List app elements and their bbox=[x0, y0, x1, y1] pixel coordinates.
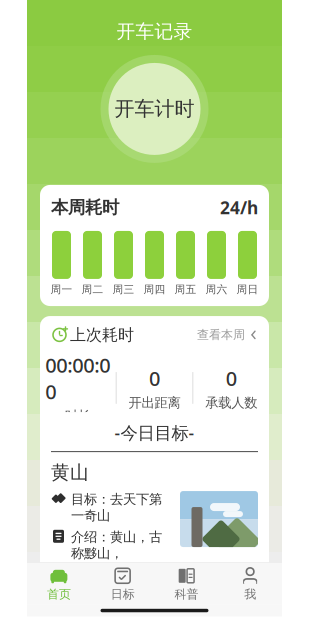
staticText: 科普 bbox=[174, 587, 198, 601]
staticText: 日标 bbox=[111, 587, 135, 601]
button[interactable]: 查看本周 bbox=[197, 327, 258, 342]
button[interactable]: 开车计时 bbox=[98, 53, 210, 165]
staticText: 24/h bbox=[220, 196, 258, 219]
staticText: 周一 bbox=[50, 283, 72, 296]
staticText: 首页 bbox=[47, 587, 71, 601]
staticText: 周三 bbox=[112, 283, 134, 296]
staticText: 周二 bbox=[81, 283, 103, 296]
staticText: 周六 bbox=[205, 283, 227, 296]
staticText: 时长 bbox=[65, 408, 91, 424]
staticText: 承载人数 bbox=[205, 394, 257, 411]
button[interactable]: 科普 bbox=[154, 563, 218, 604]
button[interactable]: 日标 bbox=[91, 563, 155, 604]
staticText: 周五 bbox=[174, 283, 196, 296]
staticText: 介绍：黄山，古称黟山， 位于安徽省黄山市境内 bbox=[71, 529, 162, 594]
staticText: 周四 bbox=[143, 283, 165, 296]
staticText: 0 bbox=[226, 365, 237, 392]
staticText: 查看本周 bbox=[197, 327, 245, 342]
staticText: 0 bbox=[149, 365, 160, 392]
staticText: -今日目标- bbox=[114, 421, 194, 444]
staticText: 00:00:00 bbox=[45, 352, 110, 405]
staticText: 我 bbox=[244, 587, 256, 601]
staticText: 开车记录 bbox=[116, 20, 192, 43]
button[interactable]: 我 bbox=[218, 563, 282, 604]
staticText: 黄山 bbox=[51, 461, 89, 484]
button[interactable]: 首页 bbox=[27, 563, 91, 604]
staticText: 开出距离 bbox=[128, 394, 180, 411]
staticText: 本周耗时 bbox=[51, 197, 119, 218]
staticText: 周日 bbox=[236, 283, 258, 296]
staticText: 上次耗时 bbox=[70, 325, 134, 345]
staticText: 开车计时 bbox=[114, 97, 194, 121]
staticText: 目标：去天下第一奇山 bbox=[71, 491, 162, 524]
